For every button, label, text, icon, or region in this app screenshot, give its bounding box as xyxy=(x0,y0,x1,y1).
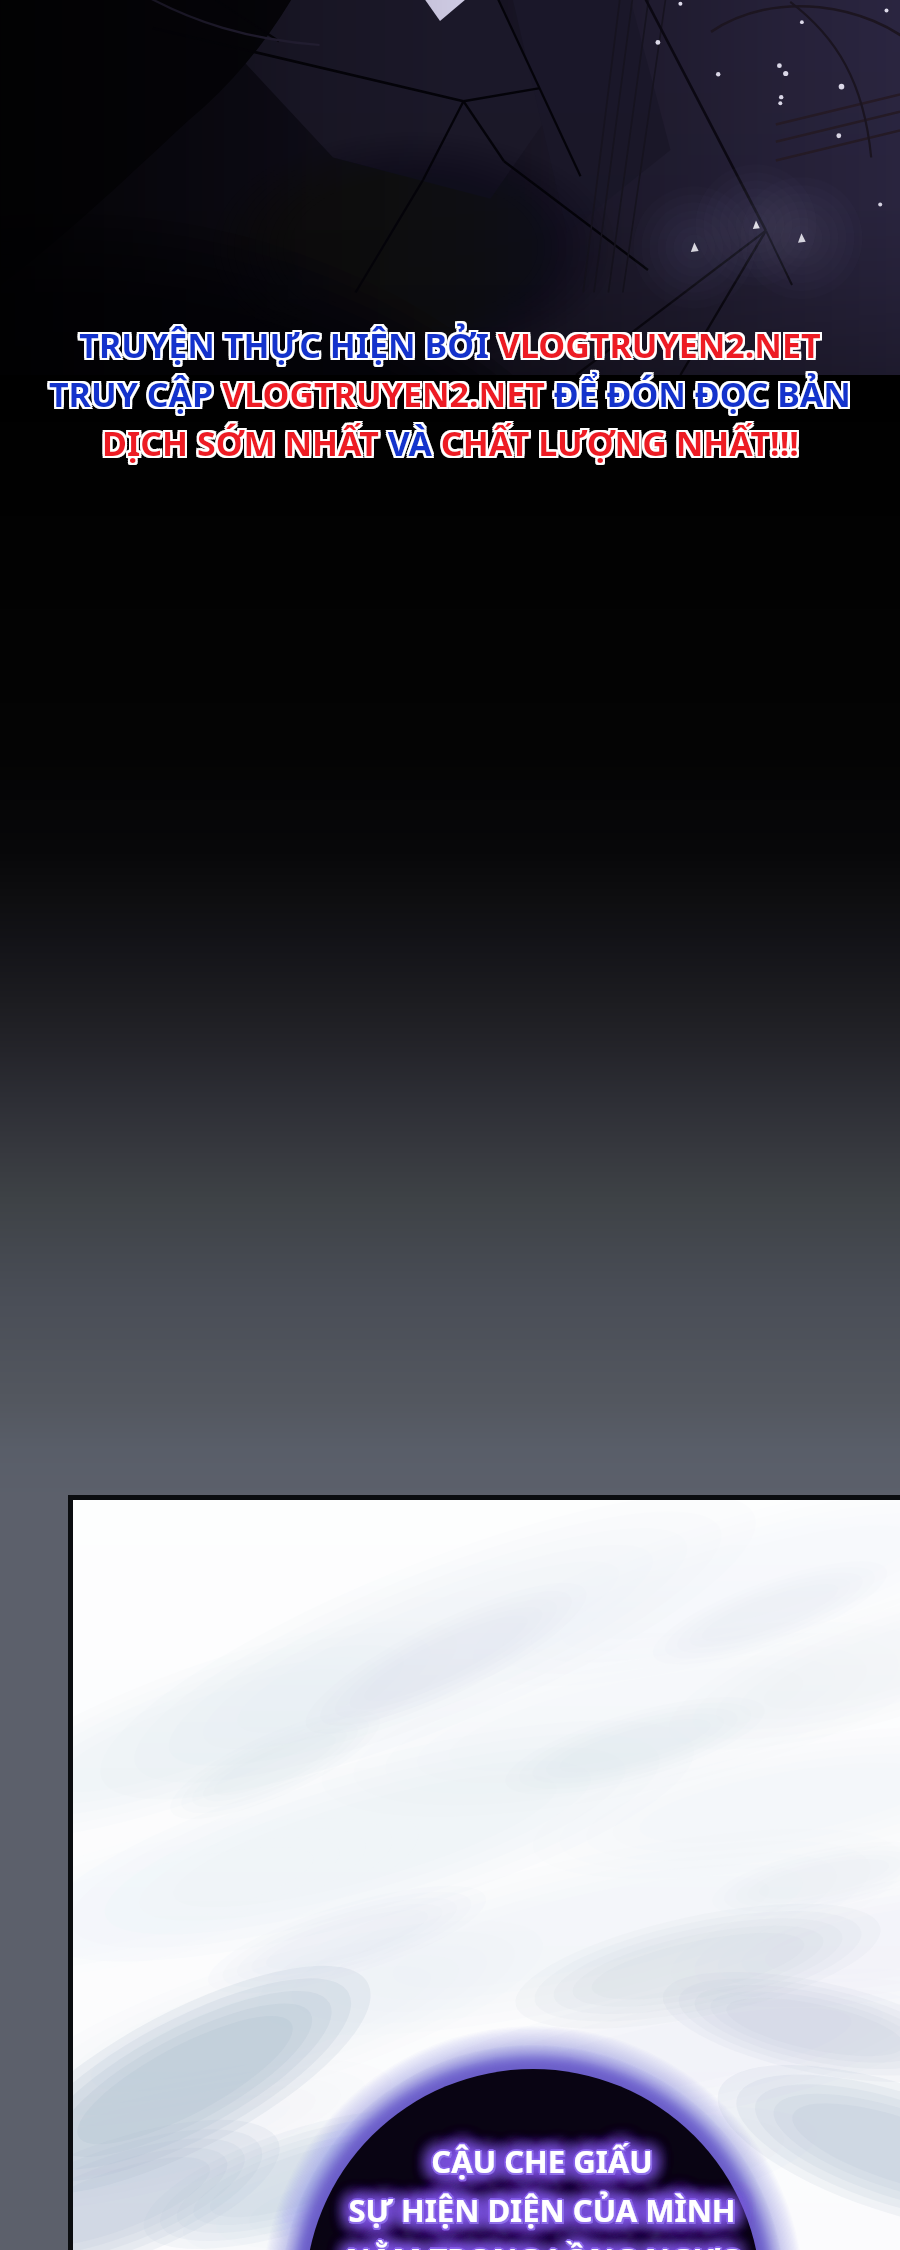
staticText: DỊCH SỚM NHẤT VÀ CHẤT LƯỢNG NHẤT!!! xyxy=(104,422,801,468)
staticText: NẰM TRONG LỒNG NGỰC xyxy=(343,2238,738,2250)
staticText: SỰ HIỆN DIỆN CỦA MÌNH xyxy=(350,2189,738,2231)
staticText: DỊCH SỚM NHẤT VÀ CHẤT LƯỢNG NHẤT!!! xyxy=(100,420,797,466)
staticText: TRUY CẬP VLOGTRUYEN2.NET ĐỂ ĐÓN ĐỌC BẢN xyxy=(49,371,851,417)
staticText: SỰ HIỆN DIỆN CỦA MÌNH xyxy=(350,2188,738,2230)
staticText: CẬU CHE GIẤU xyxy=(433,2140,655,2182)
staticText: TRUYỆN THỰC HIỆN BỞI VLOGTRUYEN2.NET xyxy=(81,320,823,366)
staticText: SỰ HIỆN DIỆN CỦA MÌNH xyxy=(350,2191,738,2233)
staticText: NẰM TRONG LỒNG NGỰC xyxy=(347,2240,742,2250)
staticText: SỰ HIỆN DIỆN CỦA MÌNH xyxy=(348,2189,736,2231)
staticText: NẰM TRONG LỒNG NGỰC xyxy=(345,2236,740,2250)
staticText: NẰM TRONG LỒNG NGỰC xyxy=(344,2237,739,2250)
staticText: CẬU CHE GIẤU xyxy=(430,2139,652,2181)
staticText: NẰM TRONG LỒNG NGỰC xyxy=(345,2240,740,2250)
staticText: NẰM TRONG LỒNG NGỰC xyxy=(347,2237,742,2250)
staticText: TRUY CẬP VLOGTRUYEN2.NET ĐỂ ĐÓN ĐỌC BẢN xyxy=(49,369,851,415)
staticText: TRUYỆN THỰC HIỆN BỞI VLOGTRUYEN2.NET xyxy=(79,324,821,370)
staticText: NẰM TRONG LỒNG NGỰC xyxy=(347,2238,742,2250)
staticText: TRUYỆN THỰC HIỆN BỞI VLOGTRUYEN2.NET xyxy=(77,324,819,370)
staticText: TRUYỆN THỰC HIỆN BỞI VLOGTRUYEN2.NET xyxy=(79,320,821,366)
staticText: TRUY CẬP VLOGTRUYEN2.NET ĐỂ ĐÓN ĐỌC BẢN xyxy=(47,371,849,417)
staticText: CẬU CHE GIẤU xyxy=(430,2142,652,2184)
staticText: CẬU CHE GIẤU xyxy=(429,2140,651,2182)
staticText: TRUY CẬP VLOGTRUYEN2.NET ĐỂ ĐÓN ĐỌC BẢN xyxy=(49,373,851,419)
staticText: TRUY CẬP VLOGTRUYEN2.NET ĐỂ ĐÓN ĐỌC BẢN xyxy=(51,369,853,415)
staticText: SỰ HIỆN DIỆN CỦA MÌNH xyxy=(347,2191,735,2233)
staticText: SỰ HIỆN DIỆN CỦA MÌNH xyxy=(348,2187,736,2229)
staticText: DỊCH SỚM NHẤT VÀ CHẤT LƯỢNG NHẤT!!! xyxy=(100,422,797,468)
staticText: DỊCH SỚM NHẤT VÀ CHẤT LƯỢNG NHẤT!!! xyxy=(104,418,801,464)
staticText: NẰM TRONG LỒNG NGỰC xyxy=(345,2238,740,2250)
staticText: DỊCH SỚM NHẤT VÀ CHẤT LƯỢNG NHẤT!!! xyxy=(102,422,799,468)
staticText: CẬU CHE GIẤU xyxy=(431,2142,653,2184)
staticText: TRUY CẬP VLOGTRUYEN2.NET ĐỂ ĐÓN ĐỌC BẢN xyxy=(51,371,853,417)
staticText: SỰ HIỆN DIỆN CỦA MÌNH xyxy=(346,2189,734,2231)
staticText: TRUY CẬP VLOGTRUYEN2.NET ĐỂ ĐÓN ĐỌC BẢN xyxy=(47,369,849,415)
staticText: DỊCH SỚM NHẤT VÀ CHẤT LƯỢNG NHẤT!!! xyxy=(102,418,799,464)
staticText: TRUYỆN THỰC HIỆN BỞI VLOGTRUYEN2.NET xyxy=(77,320,819,366)
staticText: TRUY CẬP VLOGTRUYEN2.NET ĐỂ ĐÓN ĐỌC BẢN xyxy=(51,373,853,419)
button[interactable]: TRUYỆN THỰC HIỆN BỞI VLOGTRUYEN2.NET xyxy=(0,0,900,2250)
staticText: SỰ HIỆN DIỆN CỦA MÌNH xyxy=(348,2191,736,2233)
staticText: TRUYỆN THỰC HIỆN BỞI VLOGTRUYEN2.NET xyxy=(81,324,823,370)
staticText: TRUY CẬP VLOGTRUYEN2.NET ĐỂ ĐÓN ĐỌC BẢN xyxy=(47,373,849,419)
staticText: TRUYỆN THỰC HIỆN BỞI VLOGTRUYEN2.NET xyxy=(79,322,821,368)
staticText: DỊCH SỚM NHẤT VÀ CHẤT LƯỢNG NHẤT!!! xyxy=(100,418,797,464)
staticText: CẬU CHE GIẤU xyxy=(431,2138,653,2180)
staticText: DỊCH SỚM NHẤT VÀ CHẤT LƯỢNG NHẤT!!! xyxy=(102,420,799,466)
staticText: TRUYỆN THỰC HIỆN BỞI VLOGTRUYEN2.NET xyxy=(77,322,819,368)
staticText: CẬU CHE GIẤU xyxy=(433,2139,655,2181)
staticText: NẰM TRONG LỒNG NGỰC xyxy=(344,2240,739,2250)
staticText: CẬU CHE GIẤU xyxy=(431,2140,653,2182)
staticText: DỊCH SỚM NHẤT VÀ CHẤT LƯỢNG NHẤT!!! xyxy=(104,420,801,466)
staticText: TRUYỆN THỰC HIỆN BỞI VLOGTRUYEN2.NET xyxy=(81,322,823,368)
staticText: CẬU CHE GIẤU xyxy=(433,2142,655,2184)
staticText: SỰ HIỆN DIỆN CỦA MÌNH xyxy=(347,2188,735,2230)
